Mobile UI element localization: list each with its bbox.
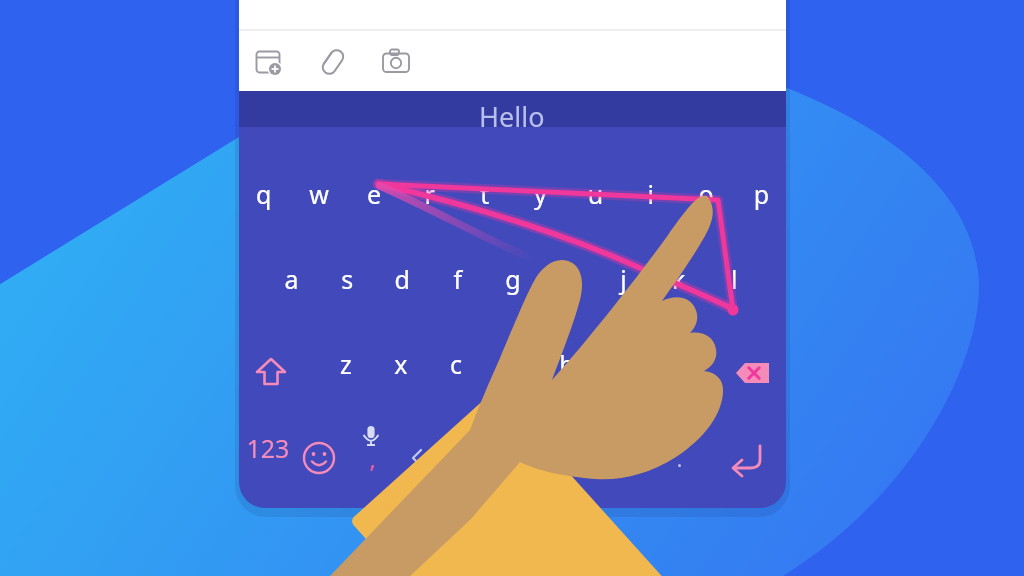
button[interactable]: Swipe typing keyboard xyxy=(0,0,1024,576)
